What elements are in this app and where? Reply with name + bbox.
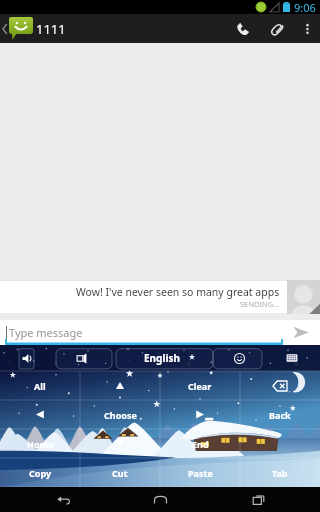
button[interactable]: Attach: [260, 14, 294, 43]
button[interactable]: More options: [294, 14, 320, 43]
button[interactable]: Keyboard: [283, 345, 301, 371]
button[interactable]: Emoji: [230, 345, 248, 371]
staticText: SENDING...: [240, 299, 280, 309]
staticText: Cut: [112, 467, 128, 479]
button[interactable]: Send: [282, 320, 320, 345]
button[interactable]: Theme: [72, 345, 90, 371]
staticText: English: [144, 351, 180, 365]
staticText: Choose: [104, 409, 137, 421]
button[interactable]: Back: [28, 487, 98, 512]
button[interactable]: Call: [226, 14, 260, 43]
button[interactable]: Copy: [0, 458, 80, 487]
button[interactable]: Up: [80, 371, 160, 400]
button[interactable]: Key: [240, 429, 320, 458]
staticText: Copy: [29, 467, 52, 479]
staticText: Wow! I've never seen so many great apps: [76, 285, 280, 299]
staticText: Tab: [272, 467, 288, 479]
button[interactable]: Paste: [160, 458, 240, 487]
button[interactable]: Home: [125, 487, 195, 512]
button[interactable]: Cut: [80, 458, 160, 487]
button[interactable]: Wow! I've never seen so many great apps: [0, 280, 287, 314]
button[interactable]: Back: [240, 400, 320, 429]
staticText: Type message: [9, 325, 83, 340]
staticText: End: [192, 438, 209, 450]
button[interactable]: Home: [0, 429, 80, 458]
button[interactable]: Navigate up: [0, 14, 33, 43]
button[interactable]: Tab: [240, 458, 320, 487]
staticText: 9:06: [294, 0, 316, 14]
button[interactable]: Right: [160, 400, 240, 429]
button[interactable]: End: [160, 429, 240, 458]
staticText: All: [34, 380, 46, 392]
staticText: Home: [27, 438, 54, 450]
button[interactable]: Recents: [223, 487, 293, 512]
button[interactable]: English: [133, 345, 191, 371]
button[interactable]: Clear: [160, 371, 240, 400]
button[interactable]: Choose: [80, 400, 160, 429]
staticText: Back: [269, 409, 291, 421]
button[interactable]: Backspace: [240, 371, 320, 400]
staticText: Paste: [188, 467, 213, 479]
button[interactable]: Left: [0, 400, 80, 429]
button[interactable]: Sound: [18, 345, 36, 371]
button[interactable]: Down: [80, 429, 160, 458]
staticText: Clear: [188, 380, 212, 392]
button[interactable]: All: [0, 371, 80, 400]
staticText: 1111: [36, 20, 66, 38]
